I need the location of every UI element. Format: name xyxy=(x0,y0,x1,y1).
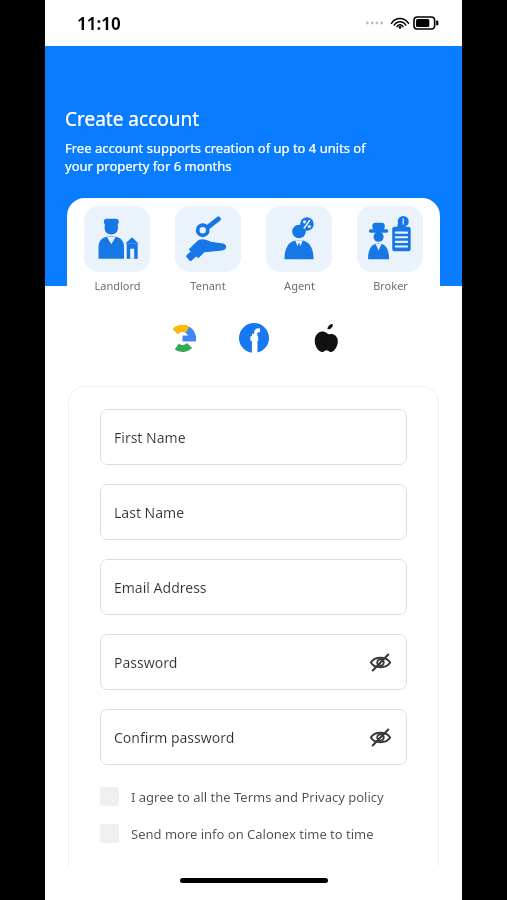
staticText: I agree to all the Terms and Privacy pol… xyxy=(131,788,384,806)
button[interactable]: Confirm password xyxy=(100,709,407,765)
staticText: Broker xyxy=(373,278,408,293)
button[interactable]: Password xyxy=(100,634,407,690)
button[interactable]: Sign in with Facebook xyxy=(230,314,278,362)
button[interactable]: Broker xyxy=(354,206,426,293)
staticText: Email Address xyxy=(114,578,207,597)
button[interactable]: First Name xyxy=(100,409,407,465)
staticText: Send more info on Calonex time to time xyxy=(131,825,374,843)
button[interactable]: Tenant xyxy=(172,206,244,293)
staticText: 11:10 xyxy=(77,12,121,35)
staticText: Password xyxy=(114,653,178,672)
button[interactable]: Agent xyxy=(263,206,335,293)
button[interactable]: Sign in with Apple xyxy=(302,314,350,362)
staticText: Tenant xyxy=(190,278,226,293)
staticText: First Name xyxy=(114,428,186,447)
button[interactable]: Sign in with Google xyxy=(158,314,206,362)
staticText: Agent xyxy=(284,278,315,293)
staticText: Landlord xyxy=(94,278,141,293)
button[interactable]: Show password xyxy=(365,722,395,752)
staticText: Create account xyxy=(65,106,200,132)
staticText: Free account supports creation of up to … xyxy=(65,139,366,175)
button[interactable]: Email Address xyxy=(100,559,407,615)
button[interactable]: I agree to all the Terms and Privacy pol… xyxy=(100,787,407,806)
button[interactable]: Show password xyxy=(365,647,395,677)
button[interactable]: Send more info on Calonex time to time xyxy=(100,824,407,843)
button[interactable]: Last Name xyxy=(100,484,407,540)
staticText: Last Name xyxy=(114,503,185,522)
button[interactable]: Landlord xyxy=(81,206,153,293)
staticText: Confirm password xyxy=(114,728,235,747)
